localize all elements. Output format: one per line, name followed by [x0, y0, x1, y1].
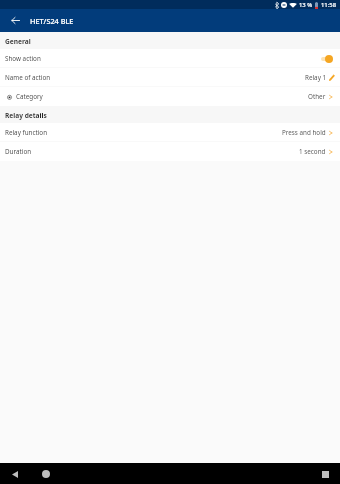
- staticText: Duration: [5, 147, 32, 156]
- button[interactable]: Recent apps: [317, 466, 333, 482]
- staticText: Category: [16, 92, 43, 101]
- staticText: Relay details: [5, 111, 47, 120]
- staticText: General: [5, 37, 31, 46]
- button[interactable]: Home: [38, 466, 54, 482]
- staticText: 13 %: [299, 1, 313, 9]
- button[interactable]: Duration: [0, 142, 340, 161]
- staticText: 11:58: [321, 1, 337, 9]
- staticText: Name of action: [5, 73, 51, 82]
- button[interactable]: Relay function: [0, 123, 340, 142]
- button[interactable]: Back: [7, 466, 23, 482]
- button[interactable]: Navigate up: [0, 9, 30, 32]
- button[interactable]: Category: [0, 87, 340, 106]
- button[interactable]: Name of action: [0, 68, 340, 87]
- button[interactable]: Show action: [0, 49, 340, 68]
- staticText: Press and hold: [282, 128, 326, 137]
- staticText: Other: [308, 92, 326, 101]
- other: Edit name: [329, 74, 335, 81]
- staticText: Relay function: [5, 128, 48, 137]
- staticText: HET/S24 BLE: [30, 16, 74, 26]
- staticText: Relay 1: [305, 73, 327, 82]
- staticText: Show action: [5, 54, 41, 63]
- staticText: 1 second: [299, 147, 326, 156]
